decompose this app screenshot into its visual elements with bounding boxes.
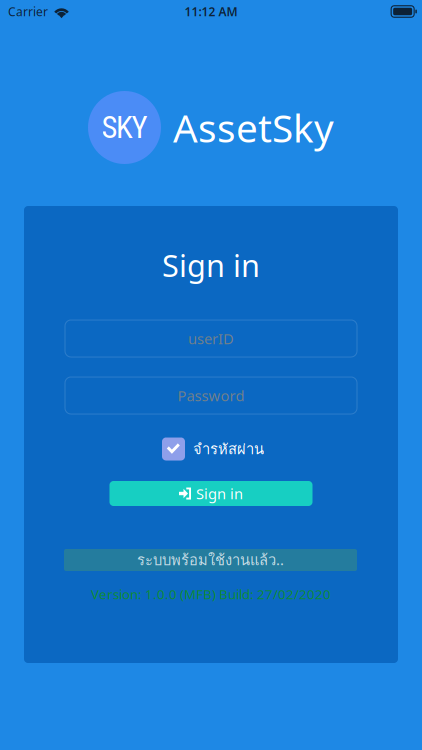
staticText: AssetSky <box>173 102 334 153</box>
staticText: ระบบพร้อมใช้งานแล้ว.. <box>137 549 284 571</box>
staticText: Password <box>177 386 244 405</box>
button[interactable]: Sign in <box>24 481 398 506</box>
button[interactable]: Password <box>65 377 357 414</box>
staticText: userID <box>188 329 234 348</box>
staticText: Version: 1.0.0 (MFB) Build: 27/02/2020 <box>91 585 331 603</box>
button[interactable]: จำรหัสผ่าน <box>24 437 402 461</box>
staticText: Sign in <box>162 245 260 285</box>
staticText: Carrier <box>8 3 48 19</box>
staticText: 11:12 AM <box>184 3 237 19</box>
staticText: Sign in <box>196 484 243 503</box>
staticText: SKY <box>101 109 147 145</box>
button[interactable]: userID <box>65 320 357 357</box>
staticText: จำรหัสผ่าน <box>193 438 264 460</box>
